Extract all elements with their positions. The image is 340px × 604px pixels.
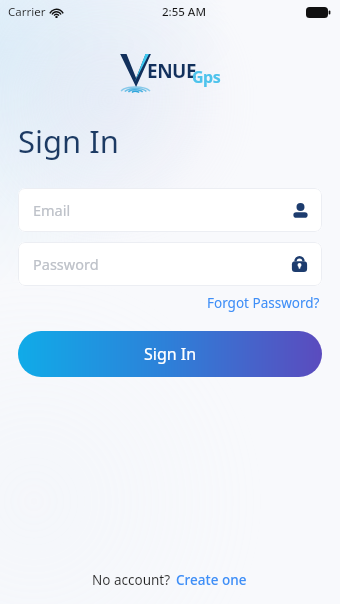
other: Password: [290, 255, 309, 274]
staticText: 2:55 AM: [162, 4, 206, 20]
staticText: Sign In: [144, 343, 197, 365]
button[interactable]: Password: [18, 242, 322, 286]
button[interactable]: Email: [18, 188, 322, 232]
staticText: Gps: [192, 66, 221, 88]
staticText: Password: [33, 254, 99, 274]
staticText: No account?: [92, 571, 174, 589]
button[interactable]: Sign In: [18, 331, 322, 377]
staticText: ENUE: [147, 58, 197, 84]
other: Email: [292, 202, 309, 219]
staticText: Carrier: [8, 4, 46, 20]
staticText: Create one: [176, 571, 247, 589]
staticText: Email: [33, 200, 71, 220]
button[interactable]: Create one: [174, 568, 249, 592]
staticText: Sign In: [18, 120, 119, 162]
button[interactable]: Forgot Password?: [205, 291, 322, 315]
staticText: Forgot Password?: [207, 294, 320, 312]
